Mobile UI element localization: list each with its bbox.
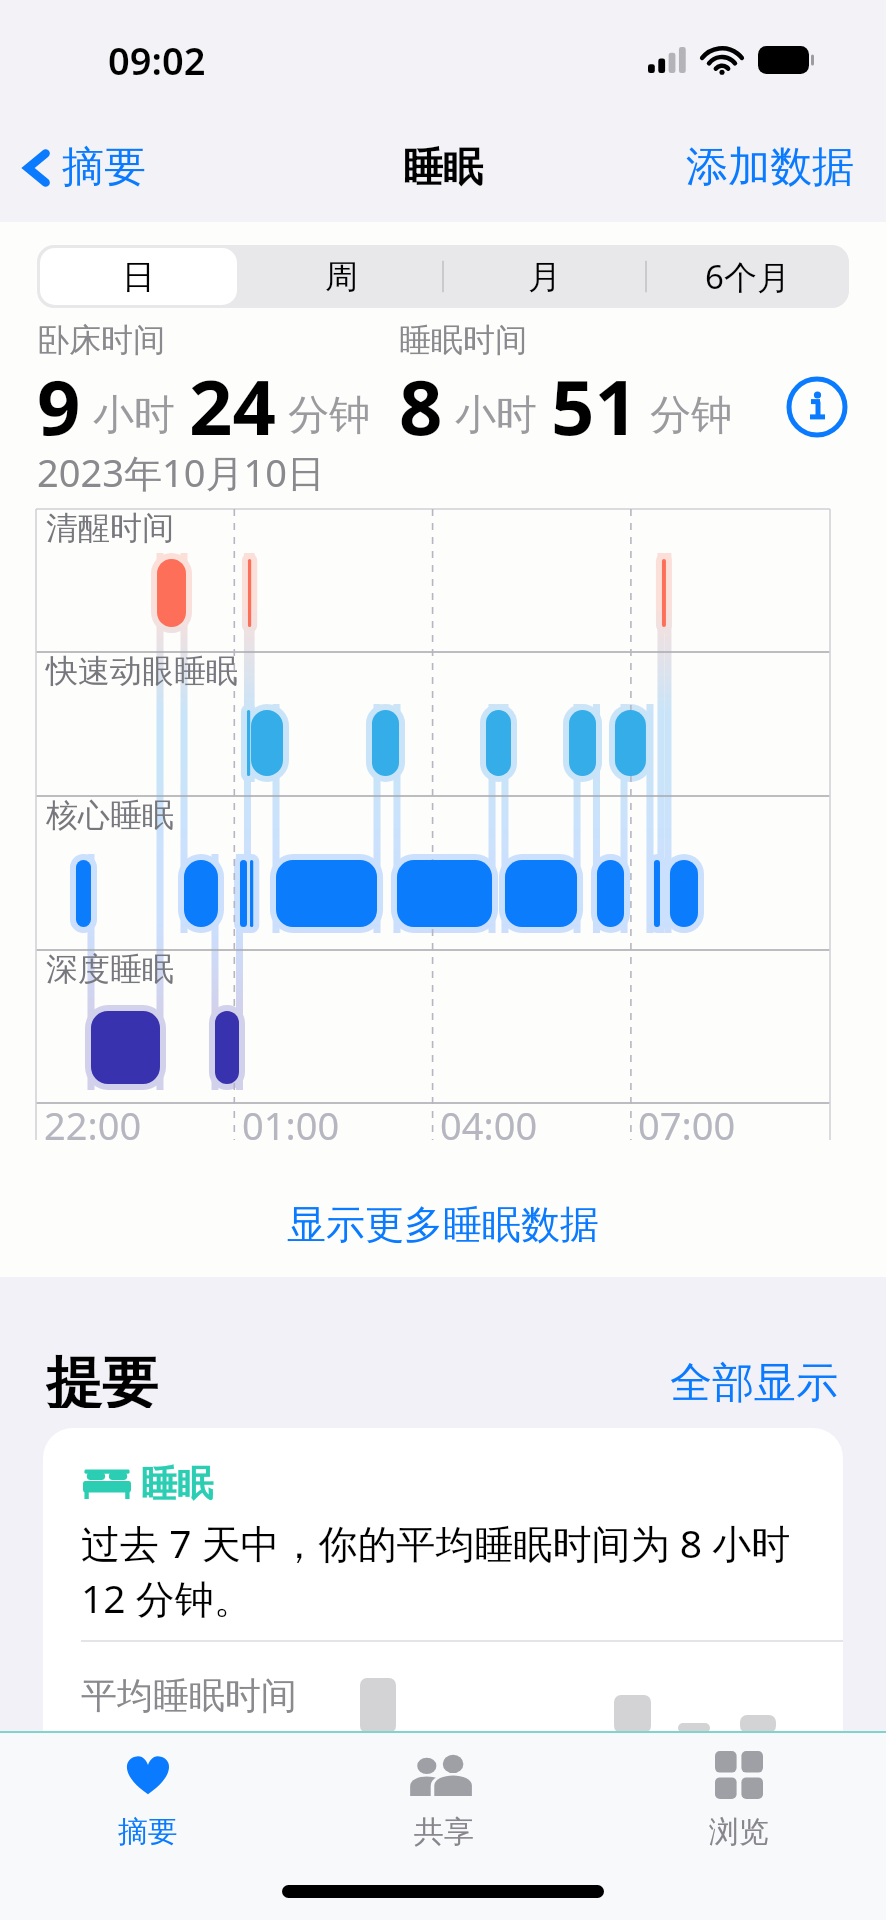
staticText: 小时 bbox=[93, 390, 175, 442]
staticText: 小时 bbox=[455, 390, 537, 442]
staticText: 2023年10月10日 bbox=[37, 446, 325, 498]
staticText: 9 bbox=[37, 354, 81, 458]
staticText: 分钟 bbox=[650, 390, 732, 442]
staticText: 分钟 bbox=[288, 390, 370, 442]
staticText: 快速动眼睡眠 bbox=[46, 651, 238, 691]
staticText: 摘要 bbox=[62, 141, 146, 194]
button[interactable]: 共享 bbox=[296, 1747, 591, 1851]
staticText: 01:00 bbox=[242, 1099, 340, 1151]
button[interactable]: 显示更多睡眠数据 bbox=[0, 1180, 886, 1268]
staticText: 核心睡眠 bbox=[46, 795, 174, 835]
staticText: 睡眠时间 bbox=[399, 320, 527, 360]
staticText: 浏览 bbox=[709, 1813, 769, 1851]
staticText: 月 bbox=[528, 256, 561, 298]
staticText: 22:00 bbox=[44, 1099, 142, 1151]
button[interactable]: 摘要 bbox=[0, 1747, 296, 1851]
staticText: 周 bbox=[325, 256, 358, 298]
staticText: 深度睡眠 bbox=[46, 949, 174, 989]
staticText: 共享 bbox=[414, 1813, 474, 1851]
staticText: 07:00 bbox=[638, 1099, 736, 1151]
staticText: 摘要 bbox=[118, 1813, 178, 1851]
button[interactable]: 添加数据 bbox=[686, 141, 854, 194]
button[interactable]: 6个月 bbox=[649, 248, 846, 305]
button[interactable]: 睡眠 bbox=[43, 1428, 843, 1788]
staticText: 04:00 bbox=[440, 1099, 538, 1151]
staticText: 清醒时间 bbox=[46, 508, 174, 548]
staticText: 09:02 bbox=[108, 34, 206, 86]
staticText: 显示更多睡眠数据 bbox=[287, 1200, 599, 1249]
staticText: 24 bbox=[189, 354, 276, 458]
button[interactable]: 关于睡眠 bbox=[787, 377, 847, 437]
staticText: 日 bbox=[122, 256, 155, 298]
staticText: 6个月 bbox=[705, 254, 790, 299]
staticText: 卧床时间 bbox=[37, 320, 165, 360]
staticText: 睡眠 bbox=[403, 142, 483, 192]
staticText: 8 bbox=[399, 354, 443, 458]
button[interactable]: 日 bbox=[40, 248, 237, 305]
button[interactable]: 摘要 bbox=[16, 141, 146, 194]
button[interactable]: 全部显示 bbox=[670, 1357, 838, 1410]
button[interactable]: 浏览 bbox=[591, 1747, 886, 1851]
staticText: 过去 7 天中，你的平均睡眠时间为 8 小时 12 分钟。 bbox=[81, 1516, 791, 1625]
button[interactable]: 月 bbox=[446, 248, 643, 305]
staticText: 平均睡眠时间 bbox=[81, 1673, 297, 1718]
staticText: 51 bbox=[551, 354, 638, 458]
button[interactable]: 周 bbox=[243, 248, 440, 305]
staticText: 提要 bbox=[46, 1348, 158, 1408]
staticText: 睡眠 bbox=[141, 1461, 213, 1506]
